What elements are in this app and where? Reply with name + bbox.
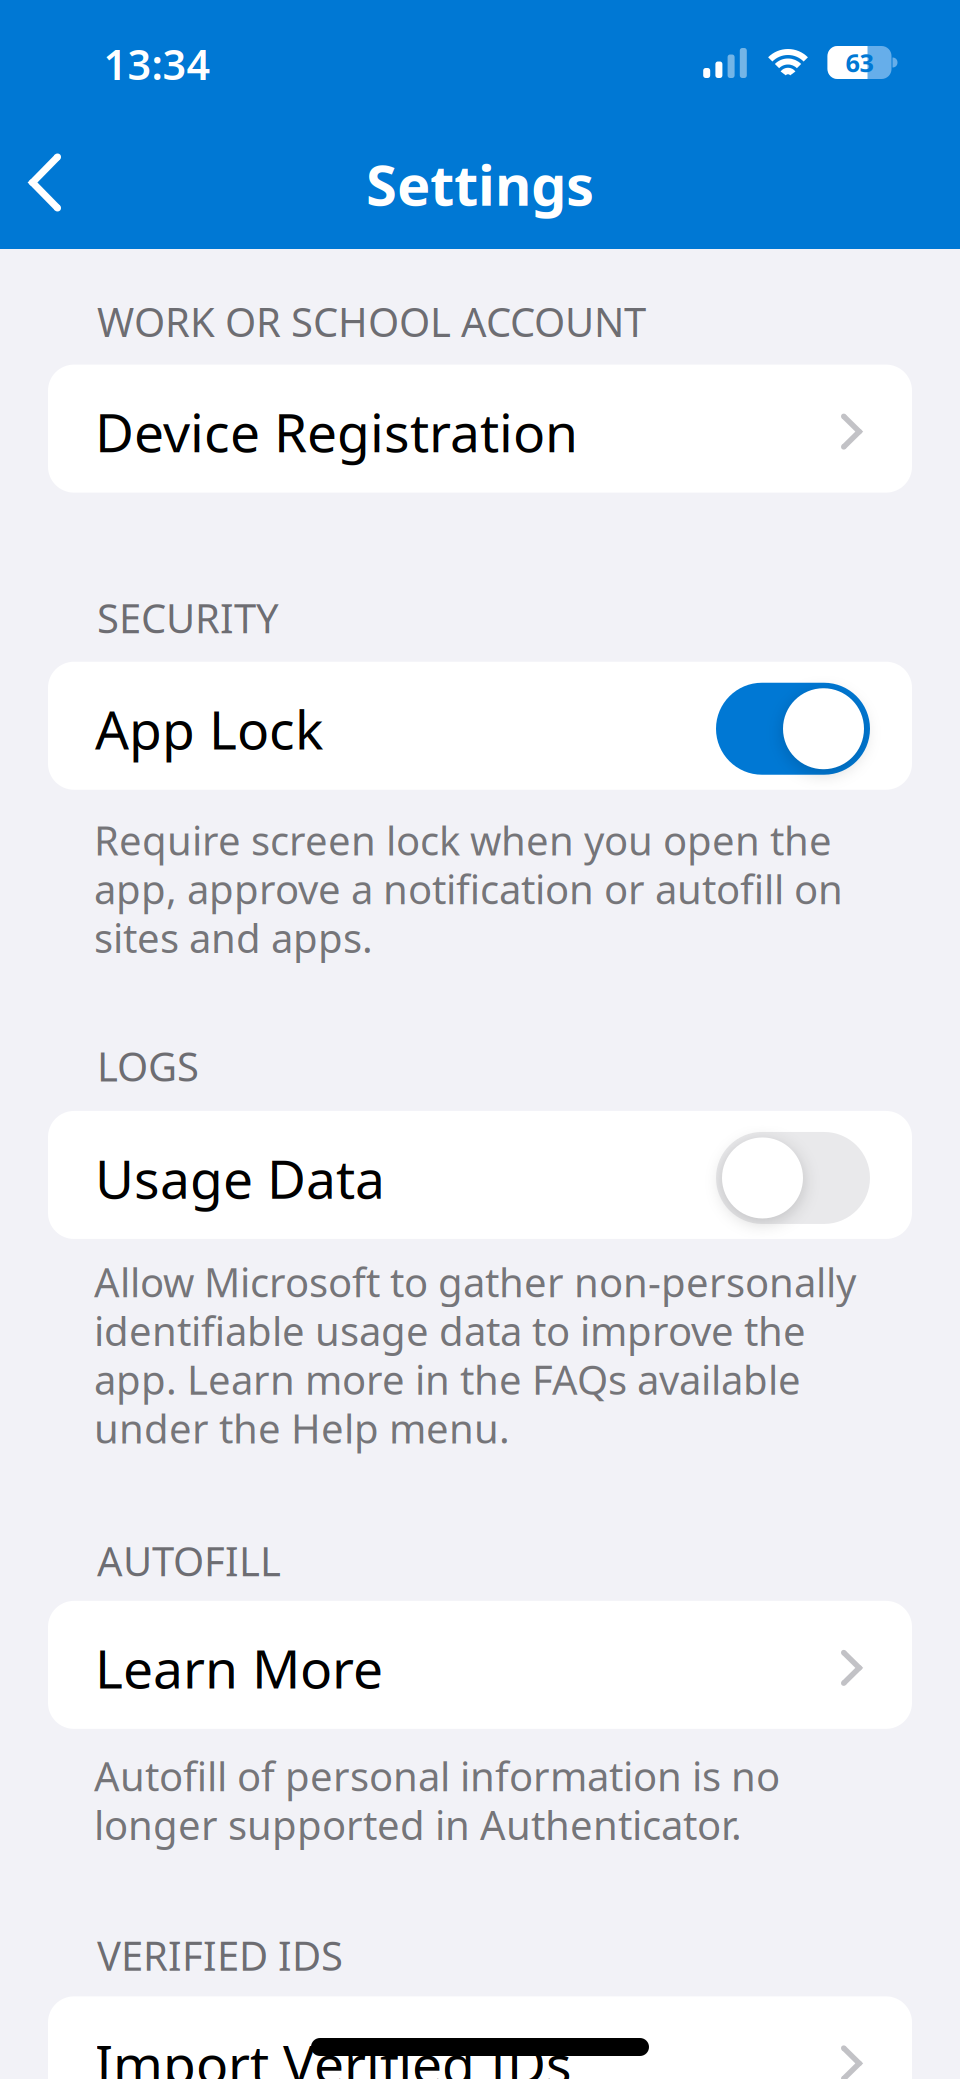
staticText: VERIFIED IDS [97,1929,343,1982]
staticText: longer supported in Authenticator. [94,1798,742,1851]
staticText: sites and apps. [94,911,373,964]
staticText: under the Help menu. [94,1401,510,1454]
button[interactable]: App Lock [716,683,870,775]
staticText: LOGS [97,1039,199,1092]
staticText: Settings [366,147,594,221]
staticText: Device Registration [95,396,578,467]
staticText: Usage Data [95,1142,385,1213]
button[interactable]: Learn More [48,1601,912,1729]
staticText: App Lock [95,693,323,764]
staticText: 63 [845,46,873,79]
staticText: WORK OR SCHOOL ACCOUNT [97,295,646,348]
staticText: 13:34 [103,37,210,91]
staticText: Autofill of personal information is no [94,1749,780,1802]
staticText: SECURITY [97,591,279,644]
staticText: Require screen lock when you open the [94,813,832,867]
staticText: app. Learn more in the FAQs available [94,1353,801,1406]
button[interactable]: Import Verified IDs [48,1996,912,2079]
button[interactable]: Usage Data [716,1132,870,1224]
staticText: Import Verified IDs [95,2028,572,2079]
button[interactable]: Device Registration [48,365,912,493]
staticText: identifiable usage data to improve the [94,1304,806,1357]
button[interactable]: Back [31,153,61,211]
staticText: Allow Microsoft to gather non-personally [94,1255,856,1308]
staticText: app, approve a notification or autofill … [94,862,843,915]
staticText: Learn More [95,1632,383,1703]
staticText: AUTOFILL [97,1534,281,1587]
